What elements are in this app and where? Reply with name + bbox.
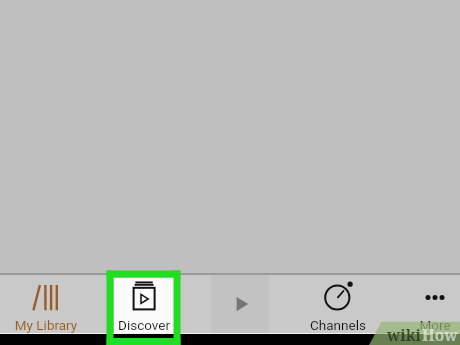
staticText: More [389, 317, 460, 333]
button[interactable]: My Library [0, 274, 92, 334]
button[interactable]: Channels [292, 274, 384, 334]
staticText: Discover [98, 317, 190, 333]
staticText: How [422, 324, 458, 345]
button[interactable]: More [389, 274, 460, 334]
staticText: wiki [387, 324, 422, 345]
staticText: Channels [292, 317, 384, 333]
button[interactable]: Discover [98, 274, 190, 334]
staticText: My Library [0, 317, 92, 333]
button[interactable]: Play [196, 274, 288, 334]
